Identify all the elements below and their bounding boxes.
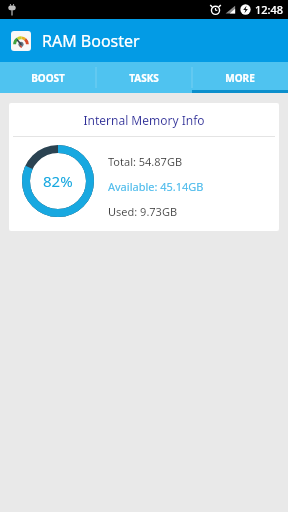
staticText: TASKS <box>129 71 159 85</box>
button[interactable]: TASKS <box>96 62 192 93</box>
staticText: 12:48 <box>255 2 284 17</box>
staticText: 82% <box>43 171 73 191</box>
staticText: Internal Memory Info <box>9 112 279 128</box>
staticText: BOOST <box>31 71 65 85</box>
staticText: Used: 9.73GB <box>108 204 178 219</box>
staticText: Total: 54.87GB <box>108 154 183 169</box>
button[interactable]: RAM Booster app icon <box>11 31 31 51</box>
staticText: MORE <box>225 71 255 85</box>
button[interactable]: MORE <box>192 62 288 93</box>
button[interactable]: Internal Memory Info <box>9 103 279 231</box>
other: USB connected <box>6 4 18 16</box>
staticText: RAM Booster <box>42 30 140 52</box>
button[interactable]: BOOST <box>0 62 96 93</box>
staticText: Available: 45.14GB <box>108 179 204 194</box>
